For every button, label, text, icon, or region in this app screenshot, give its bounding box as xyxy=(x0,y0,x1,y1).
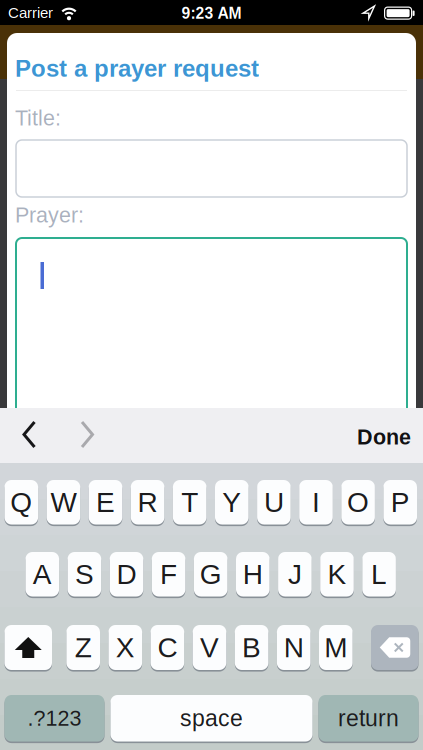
staticText: I xyxy=(312,487,320,518)
button[interactable]: H xyxy=(236,552,270,598)
button[interactable]: S xyxy=(68,552,101,598)
button[interactable]: R xyxy=(131,480,164,526)
staticText: 9:23 AM xyxy=(181,4,241,22)
staticText: J xyxy=(288,559,302,590)
staticText: L xyxy=(371,559,387,590)
staticText: Post a prayer request xyxy=(15,55,259,82)
button[interactable] xyxy=(74,414,100,454)
staticText: O xyxy=(347,487,369,518)
staticText: W xyxy=(50,487,76,518)
button[interactable]: W xyxy=(47,480,80,526)
button[interactable]: Done xyxy=(357,425,423,449)
button[interactable]: return xyxy=(318,695,418,743)
button[interactable]: space xyxy=(110,695,312,743)
staticText: H xyxy=(243,559,263,590)
button[interactable]: I xyxy=(299,480,333,526)
button[interactable]: V xyxy=(193,625,226,672)
button[interactable]: O xyxy=(341,480,375,526)
button[interactable]: K xyxy=(320,552,354,598)
button[interactable]: U xyxy=(257,480,291,526)
button[interactable]: L xyxy=(362,552,396,598)
staticText: Z xyxy=(75,632,92,663)
staticText: C xyxy=(157,632,177,663)
button[interactable]: J xyxy=(278,552,312,598)
button[interactable]: E xyxy=(89,480,122,526)
button[interactable]: T xyxy=(173,480,206,526)
staticText: B xyxy=(242,632,261,663)
button[interactable]: F xyxy=(152,552,185,598)
button[interactable] xyxy=(16,238,407,420)
staticText: T xyxy=(181,487,198,518)
staticText: M xyxy=(324,632,347,663)
staticText: S xyxy=(75,559,94,590)
button[interactable]: Y xyxy=(215,480,249,526)
staticText: N xyxy=(284,632,304,663)
button[interactable]: D xyxy=(110,552,143,598)
staticText: U xyxy=(264,487,284,518)
staticText: X xyxy=(116,632,135,663)
button[interactable]: X xyxy=(108,625,142,672)
staticText: space xyxy=(180,705,243,731)
staticText: E xyxy=(96,487,115,518)
button[interactable] xyxy=(4,625,52,672)
button[interactable] xyxy=(16,140,407,197)
button[interactable]: P xyxy=(383,480,417,526)
button[interactable]: M xyxy=(319,625,353,672)
button[interactable] xyxy=(371,625,418,672)
button[interactable]: .?123 xyxy=(4,695,104,743)
staticText: F xyxy=(160,559,177,590)
button[interactable]: N xyxy=(277,625,310,672)
button[interactable]: B xyxy=(235,625,268,672)
staticText: Y xyxy=(222,487,241,518)
staticText: Q xyxy=(10,487,32,518)
staticText: Title: xyxy=(15,106,61,130)
staticText: K xyxy=(327,559,346,590)
staticText: Carrier xyxy=(8,4,53,21)
button[interactable]: G xyxy=(194,552,227,598)
staticText: .?123 xyxy=(27,706,81,730)
staticText: Done xyxy=(357,425,411,449)
button[interactable]: Z xyxy=(66,625,100,672)
button[interactable]: C xyxy=(151,625,184,672)
staticText: return xyxy=(338,705,399,731)
button[interactable]: A xyxy=(25,552,59,598)
staticText: G xyxy=(200,559,222,590)
button[interactable]: Q xyxy=(4,480,38,526)
button[interactable] xyxy=(16,414,42,454)
staticText: Prayer: xyxy=(15,203,84,227)
staticText: V xyxy=(200,632,219,663)
staticText: A xyxy=(33,559,52,590)
staticText: R xyxy=(138,487,158,518)
staticText: D xyxy=(116,559,136,590)
staticText: P xyxy=(391,487,410,518)
